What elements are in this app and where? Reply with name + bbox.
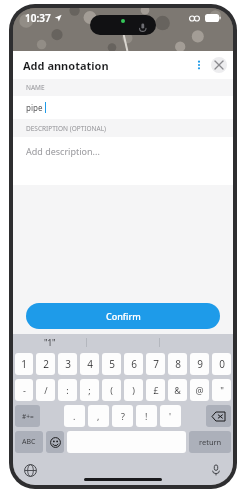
button[interactable]: ! [136,405,157,427]
button[interactable]: #+= [15,405,40,427]
button[interactable]: 2 [36,353,55,375]
staticText: 10:37 [25,11,51,25]
button[interactable]: ABC [15,431,43,453]
staticText: NAME [26,83,45,92]
button[interactable]: pipe [13,96,233,119]
button[interactable]: Confirm [26,303,220,329]
button[interactable]: Emoji [46,431,64,453]
staticText: 0 [219,357,225,371]
staticText: ! [145,410,148,422]
button[interactable]: ( [102,379,121,401]
staticText: 9 [197,357,203,371]
staticText: 8 [175,357,181,371]
staticText: ABC [22,437,36,447]
staticText: , [97,410,100,422]
button[interactable]: . [64,405,85,427]
staticText: Add description... [26,145,100,157]
button[interactable]: ) [124,379,143,401]
button[interactable]: £ [146,379,165,401]
staticText: DESCRIPTION (OPTIONAL) [26,124,107,133]
staticText: 6 [131,357,137,371]
button[interactable]: 7 [146,353,165,375]
staticText: 3 [65,357,71,371]
button[interactable]: 4 [80,353,99,375]
button[interactable]: More options [190,56,208,74]
button[interactable]: " [212,379,231,401]
button[interactable]: - [15,379,33,401]
button[interactable]: Add description... [13,137,233,185]
button[interactable]: ' [160,405,181,427]
staticText: / [44,384,48,396]
button[interactable]: Close [211,57,227,73]
staticText: #+= [22,412,34,421]
button[interactable]: / [36,379,55,401]
button[interactable]: ; [80,379,99,401]
staticText: Confirm [106,310,141,322]
staticText: - [23,384,26,396]
staticText: ( [110,384,113,396]
button[interactable]: 3 [58,353,77,375]
button[interactable]: Dictation [207,461,225,479]
button[interactable]: & [168,379,187,401]
staticText: : [66,384,69,396]
staticText: ? [121,410,125,422]
button[interactable]: 8 [168,353,187,375]
staticText: "1" [44,337,56,348]
button[interactable]: 6 [124,353,143,375]
staticText: £ [153,384,159,396]
staticText: ) [132,384,135,396]
staticText: & [174,384,181,396]
button[interactable]: "1" [13,334,87,351]
staticText: 5 [109,357,115,371]
staticText: return [199,437,222,447]
staticText: pipe [26,102,45,113]
staticText: 2 [43,357,49,371]
button[interactable]: 9 [190,353,209,375]
staticText: @ [195,384,204,396]
button[interactable]: ? [112,405,133,427]
staticText: " [220,384,224,396]
staticText: 1 [21,357,27,371]
button[interactable]: Backspace [206,405,231,427]
button[interactable]: 0 [212,353,231,375]
staticText: 4 [87,357,93,371]
button[interactable]: , [88,405,109,427]
staticText: 7 [153,357,159,371]
staticText: Add annotation [23,58,109,73]
button[interactable]: 5 [102,353,121,375]
button[interactable]: return [189,431,231,453]
button[interactable]: 1 [15,353,33,375]
staticText: ' [169,410,172,422]
button[interactable]: @ [190,379,209,401]
staticText: ; [88,384,91,396]
staticText: . [73,410,76,422]
button[interactable]: Change keyboard [21,461,39,479]
button[interactable]: : [58,379,77,401]
